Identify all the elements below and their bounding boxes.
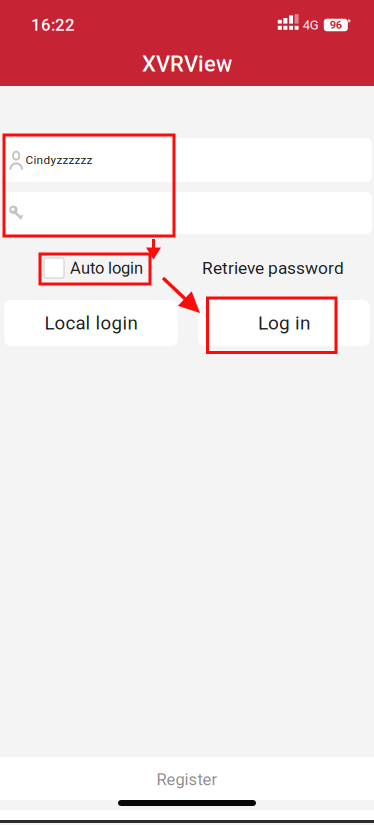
button[interactable]: Local login [4,300,177,346]
staticText: Local login [44,312,137,334]
button[interactable]: Log in [198,300,369,346]
staticText: XVRView [142,51,232,77]
button[interactable]: Register [0,757,374,802]
button[interactable]: Auto login [44,258,143,278]
staticText: 16:22 [31,15,75,35]
button[interactable]: Retrieve password [202,258,344,278]
staticText: 4G [303,17,319,33]
staticText: Cindyzzzzzz [25,153,92,167]
staticText: Log in [258,312,310,334]
staticText: Register [156,770,217,789]
staticText: Auto login [70,258,143,278]
staticText: Retrieve password [202,258,344,278]
staticText: 96 [330,19,342,31]
